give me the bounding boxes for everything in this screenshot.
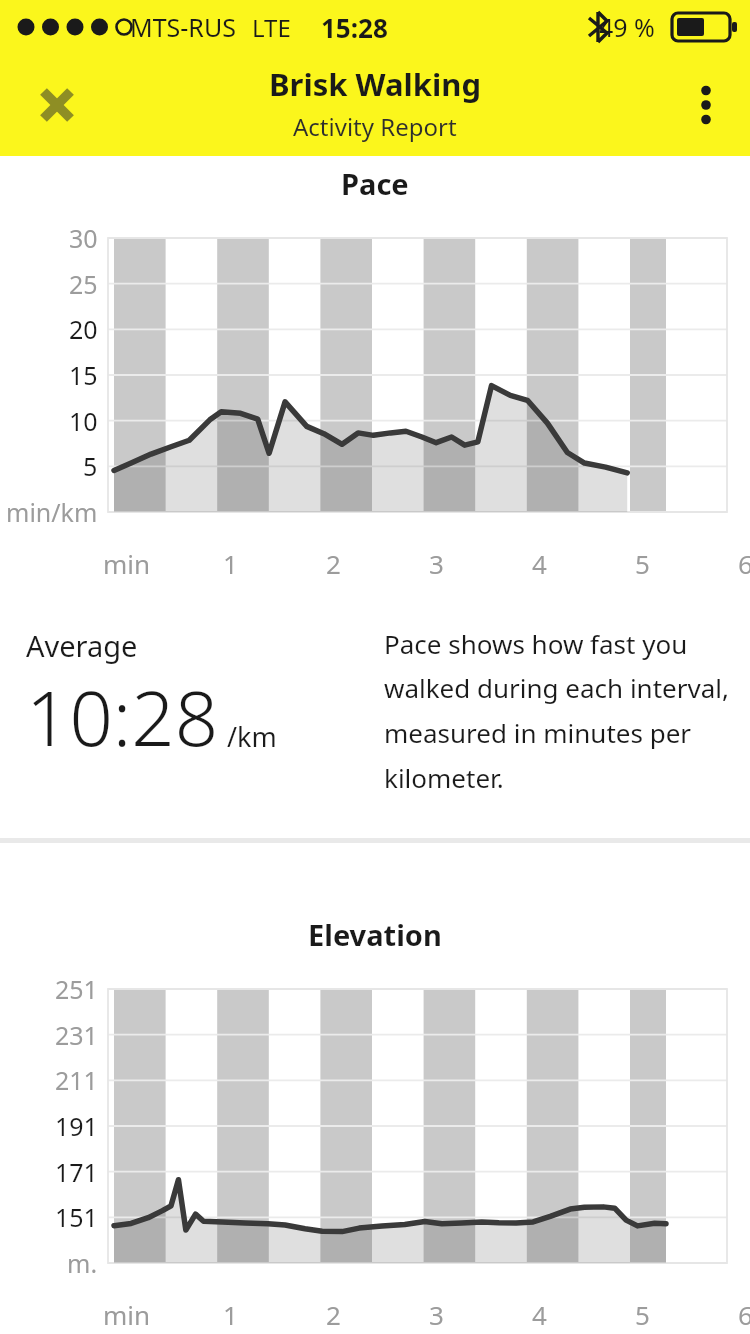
staticText: Average <box>26 626 138 665</box>
staticText: m. <box>67 1246 98 1280</box>
staticText: 251 <box>55 972 98 1006</box>
staticText: 15:28 <box>321 10 388 45</box>
staticText: 3 <box>429 546 444 581</box>
staticText: /km <box>227 718 277 755</box>
staticText: 20 <box>69 312 98 346</box>
staticText: min <box>103 546 151 581</box>
staticText: 10:28 <box>26 665 219 769</box>
staticText: min <box>103 1297 151 1332</box>
staticText: 191 <box>55 1109 98 1143</box>
staticText: 151 <box>55 1200 98 1234</box>
staticText: 5 <box>83 449 98 483</box>
button[interactable]: More options <box>670 69 742 141</box>
staticText: 211 <box>55 1063 98 1097</box>
staticText: min/km <box>6 495 98 529</box>
staticText: 2 <box>326 1297 341 1332</box>
staticText: Pace shows how fast you walked during ea… <box>384 626 729 796</box>
staticText: 1 <box>223 1297 238 1332</box>
staticText: 231 <box>55 1018 98 1052</box>
staticText: 5 <box>635 546 650 581</box>
staticText: 4 <box>532 546 547 581</box>
staticText: MTS-RUS <box>130 10 236 44</box>
staticText: 4 <box>532 1297 547 1332</box>
staticText: Pace <box>341 164 409 203</box>
staticText: 5 <box>635 1297 650 1332</box>
staticText: 6 <box>738 1297 750 1332</box>
staticText: 6 <box>738 546 750 581</box>
staticText: 15 <box>69 358 98 392</box>
staticText: 30 <box>69 221 98 255</box>
staticText: LTE <box>252 11 291 44</box>
staticText: 2 <box>326 546 341 581</box>
staticText: 10 <box>69 404 98 438</box>
staticText: Brisk Walking <box>269 63 481 105</box>
staticText: 171 <box>55 1155 98 1189</box>
staticText: 49 % <box>599 10 655 44</box>
staticText: 25 <box>69 267 98 301</box>
staticText: Activity Report <box>293 110 457 143</box>
staticText: 3 <box>429 1297 444 1332</box>
staticText: Elevation <box>308 915 442 954</box>
staticText: 1 <box>223 546 238 581</box>
button[interactable]: Close <box>18 66 96 144</box>
